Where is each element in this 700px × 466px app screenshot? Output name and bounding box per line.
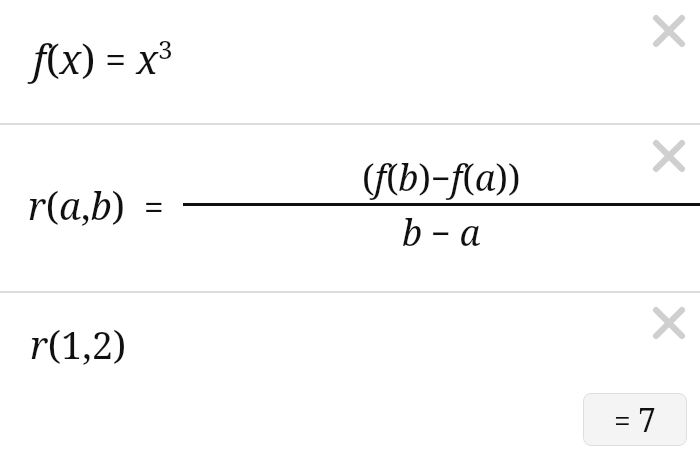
button[interactable]: Delete expression [646,8,692,54]
button[interactable]: r(a,b) = [0,125,700,291]
staticText: (f(b)−f(a)) [362,153,521,202]
button[interactable]: Delete expression [646,133,692,179]
button[interactable]: Delete expression [646,300,692,346]
button[interactable]: f(x) = x3 [0,0,700,123]
staticText: r(a,b) = [28,179,183,231]
staticText: r(1,2) [30,318,127,370]
staticText: b − a [402,208,481,257]
button[interactable]: r(1,2) [0,293,700,466]
staticText: f(x) = x3 [33,31,173,85]
staticText: = 7 [614,398,656,442]
button[interactable]: = 7 [583,393,687,446]
